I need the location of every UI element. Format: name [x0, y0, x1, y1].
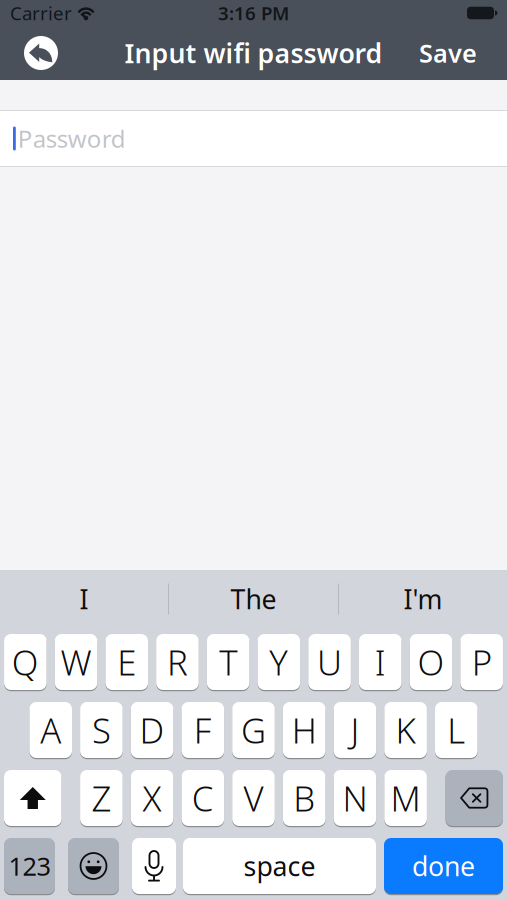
staticText: Carrier: [10, 1, 72, 25]
staticText: G: [241, 707, 266, 753]
button[interactable]: [132, 838, 176, 894]
staticText: L: [447, 707, 465, 753]
staticText: Password: [18, 123, 126, 154]
staticText: R: [167, 639, 188, 685]
button[interactable]: I: [0, 570, 168, 628]
staticText: V: [243, 775, 263, 821]
staticText: S: [92, 707, 111, 753]
button[interactable]: K: [384, 702, 427, 758]
staticText: A: [40, 707, 61, 753]
staticText: O: [417, 639, 444, 685]
staticText: I'm: [403, 581, 442, 617]
staticText: done: [412, 848, 475, 884]
staticText: T: [219, 639, 237, 685]
staticText: 3:16 PM: [218, 1, 289, 25]
button[interactable]: U: [308, 634, 351, 690]
staticText: X: [143, 775, 162, 821]
button[interactable]: The: [169, 570, 338, 628]
button[interactable]: M: [384, 770, 427, 826]
button[interactable]: done: [384, 838, 503, 894]
button[interactable]: Save: [419, 36, 477, 70]
staticText: J: [350, 707, 359, 753]
staticText: F: [194, 707, 212, 753]
staticText: I: [79, 581, 88, 617]
staticText: D: [140, 707, 165, 753]
button[interactable]: P: [460, 634, 503, 690]
staticText: C: [192, 775, 214, 821]
staticText: W: [60, 639, 91, 685]
staticText: K: [396, 707, 416, 753]
button[interactable]: [68, 838, 119, 894]
button[interactable]: H: [283, 702, 325, 758]
staticText: Z: [91, 775, 111, 821]
staticText: B: [293, 775, 315, 821]
button[interactable]: J: [334, 702, 376, 758]
button[interactable]: C: [181, 770, 224, 826]
staticText: Q: [12, 639, 39, 685]
button[interactable]: Z: [80, 770, 123, 826]
button[interactable]: D: [131, 702, 173, 758]
staticText: Save: [419, 36, 477, 70]
button[interactable]: [24, 36, 58, 70]
button[interactable]: 123: [4, 838, 55, 894]
button[interactable]: V: [232, 770, 275, 826]
button[interactable]: E: [105, 634, 148, 690]
staticText: Input wifi password: [124, 35, 382, 71]
button[interactable]: I: [359, 634, 401, 690]
button[interactable]: N: [334, 770, 376, 826]
staticText: space: [243, 848, 315, 884]
staticText: I: [375, 639, 386, 685]
button[interactable]: F: [181, 702, 224, 758]
button[interactable]: B: [283, 770, 325, 826]
button[interactable]: Y: [257, 634, 300, 690]
button[interactable]: A: [29, 702, 72, 758]
staticText: Y: [269, 639, 288, 685]
button[interactable]: G: [232, 702, 275, 758]
button[interactable]: S: [80, 702, 123, 758]
staticText: U: [317, 639, 342, 685]
button[interactable]: R: [156, 634, 199, 690]
staticText: M: [391, 775, 421, 821]
button[interactable]: X: [131, 770, 173, 826]
button[interactable]: space: [183, 838, 376, 894]
button[interactable]: [4, 770, 61, 826]
staticText: 123: [8, 849, 50, 883]
button[interactable]: Password: [0, 111, 507, 166]
button[interactable]: I'm: [339, 570, 507, 628]
button[interactable]: L: [435, 702, 478, 758]
staticText: E: [117, 639, 136, 685]
button[interactable]: T: [207, 634, 249, 690]
button[interactable]: Q: [4, 634, 47, 690]
button[interactable]: [445, 770, 503, 826]
staticText: The: [230, 581, 276, 617]
staticText: N: [342, 775, 367, 821]
button[interactable]: O: [410, 634, 452, 690]
button[interactable]: W: [55, 634, 97, 690]
staticText: P: [472, 639, 492, 685]
staticText: H: [292, 707, 317, 753]
